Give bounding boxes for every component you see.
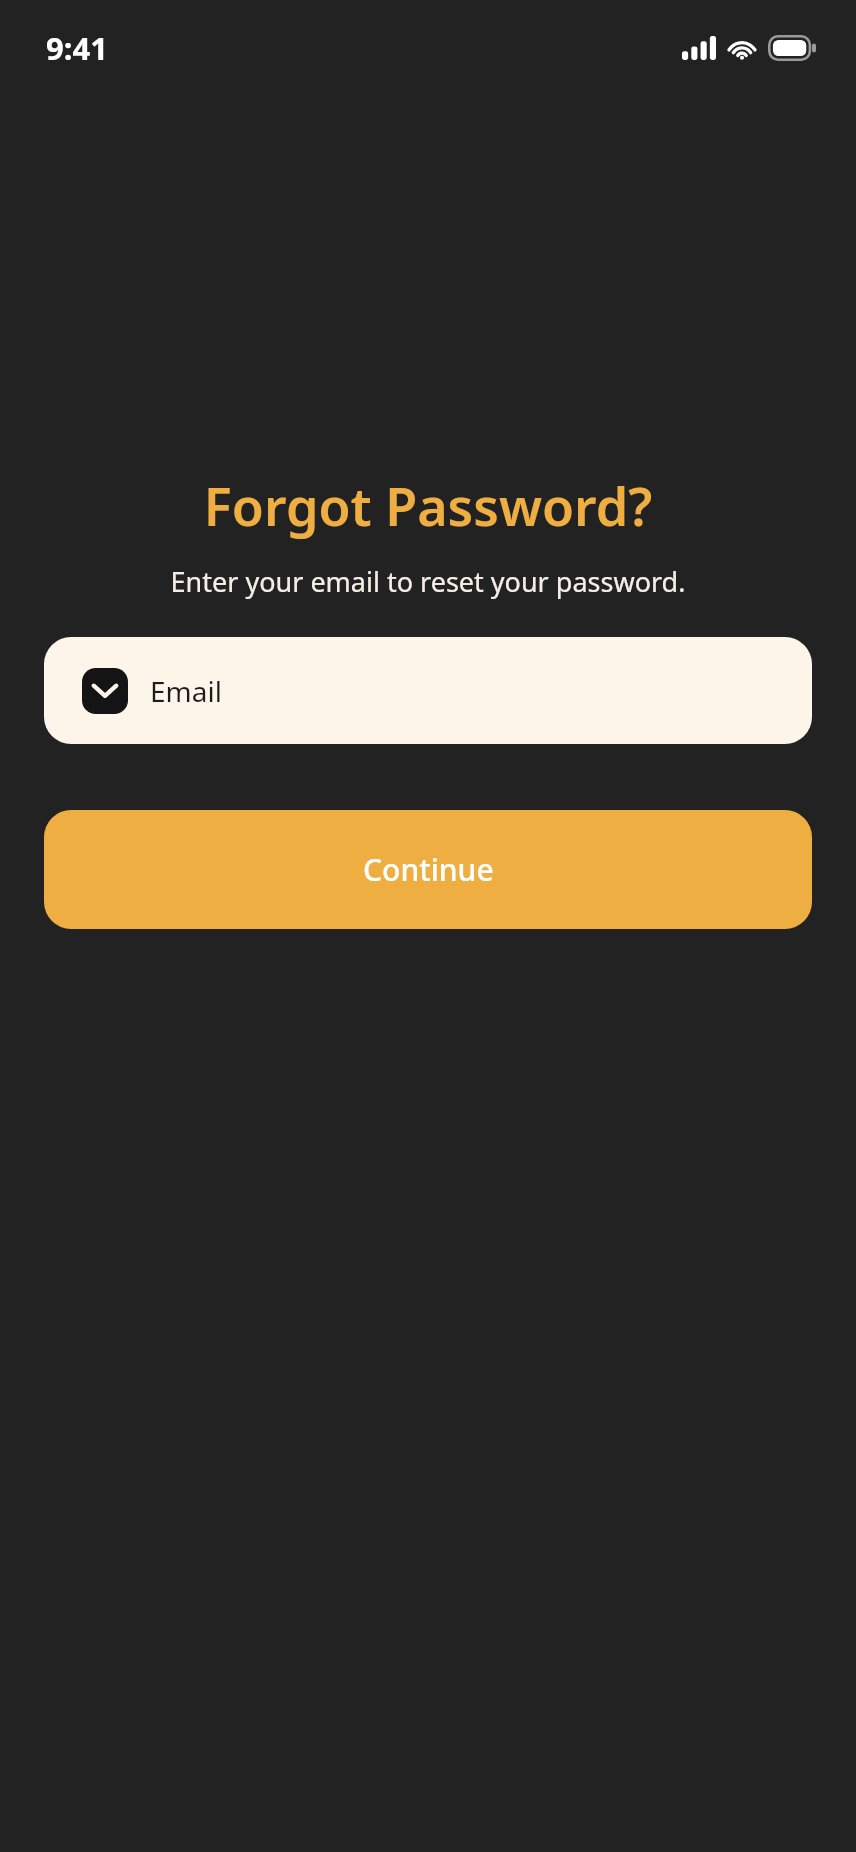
other: Cellular signal [682,36,716,60]
button[interactable]: Continue [44,810,812,929]
staticText: Enter your email to reset your password. [0,563,856,600]
staticText: Email [150,672,222,710]
staticText: Continue [363,849,494,890]
other: Battery [768,35,816,61]
staticText: 9:41 [46,27,108,69]
other: Wi-Fi [726,36,758,60]
staticText: Forgot Password? [0,470,856,541]
button[interactable]: Email [44,637,812,744]
other: Email [82,668,128,714]
